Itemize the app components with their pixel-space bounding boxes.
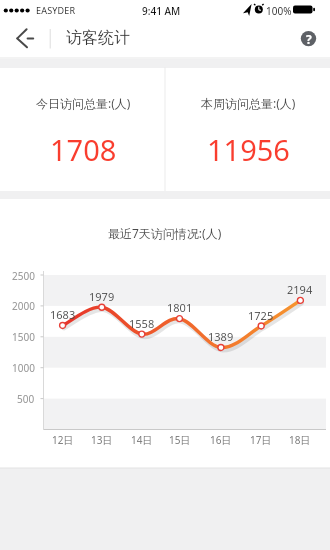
staticText: 1500 xyxy=(12,330,35,344)
staticText: 17日 xyxy=(250,433,272,447)
staticText: 1979 xyxy=(89,289,115,304)
staticText: 12日 xyxy=(52,433,74,447)
staticText: 1801 xyxy=(167,300,193,315)
staticText: ? xyxy=(306,31,312,47)
button[interactable]: ? xyxy=(299,31,319,47)
staticText: 100% xyxy=(266,4,292,18)
staticText: 最近7天访问情况:(人) xyxy=(108,225,222,241)
staticText: 1683 xyxy=(50,307,76,322)
staticText: 14日 xyxy=(131,433,153,447)
button[interactable] xyxy=(8,22,48,56)
staticText: 15日 xyxy=(169,433,191,447)
staticText: 9:41 AM xyxy=(142,4,181,18)
staticText: 18日 xyxy=(289,433,311,447)
staticText: 1708 xyxy=(50,130,117,169)
staticText: 1389 xyxy=(208,329,234,344)
staticText: 1558 xyxy=(129,316,155,331)
staticText: 今日访问总量:(人) xyxy=(36,95,131,111)
staticText: 2000 xyxy=(12,299,35,313)
staticText: 1000 xyxy=(12,361,35,375)
staticText: 13日 xyxy=(91,433,113,447)
staticText: 2500 xyxy=(12,269,35,283)
staticText: 2194 xyxy=(287,282,313,297)
button[interactable]: 今日访问总量:(人) xyxy=(0,67,165,191)
staticText: 1725 xyxy=(248,308,274,323)
staticText: 16日 xyxy=(210,433,232,447)
staticText: 本周访问总量:(人) xyxy=(201,95,296,111)
staticText: 500 xyxy=(17,392,35,406)
staticText: 访客统计 xyxy=(66,28,130,48)
staticText: EASYDER xyxy=(36,4,76,16)
button[interactable]: 本周访问总量:(人) xyxy=(165,67,330,191)
staticText: 11956 xyxy=(207,130,290,169)
